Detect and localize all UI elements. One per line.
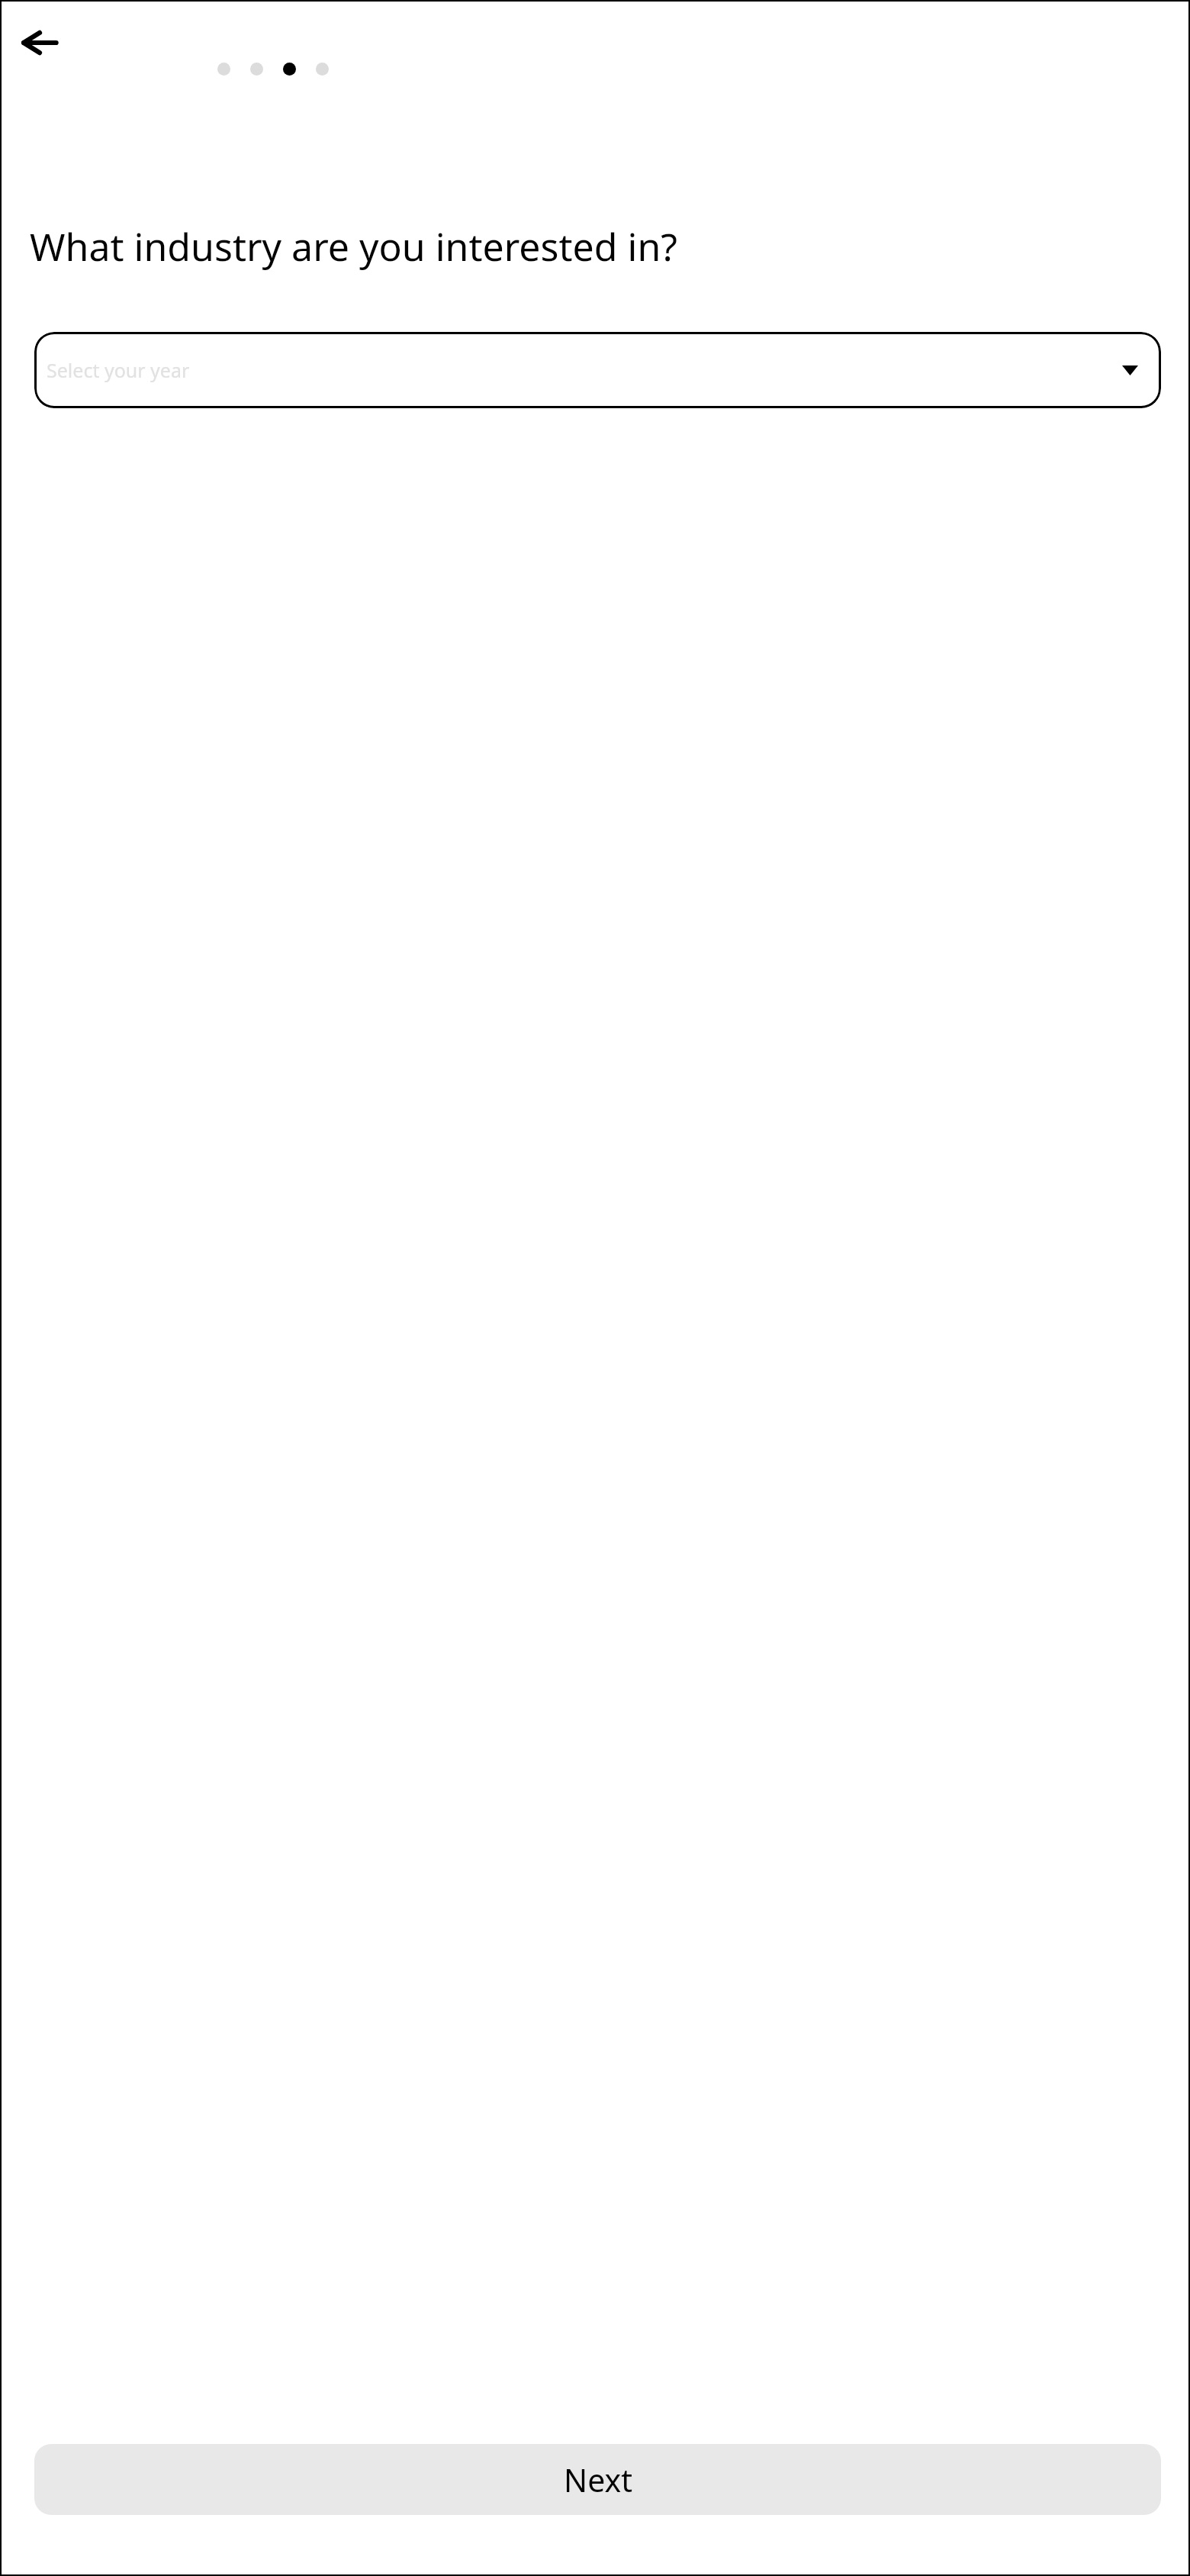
staticText: Next (564, 2458, 632, 2501)
button[interactable]: Next (34, 2444, 1161, 2515)
staticText: What industry are you interested in? (30, 221, 1143, 272)
button[interactable]: Back (15, 18, 64, 67)
button[interactable]: Select your year (34, 332, 1161, 408)
staticText: Select your year (47, 357, 190, 383)
